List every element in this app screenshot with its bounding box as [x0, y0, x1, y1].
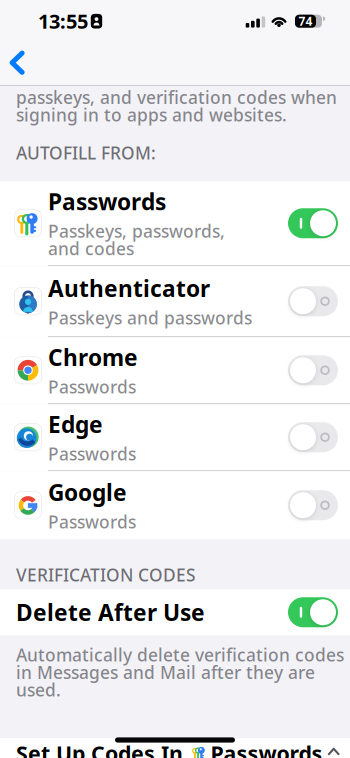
- button[interactable]: Back: [9, 50, 25, 75]
- button[interactable]: Google: [0, 471, 350, 539]
- staticText: Passwords: [48, 375, 136, 398]
- staticText: Edge: [48, 409, 103, 439]
- staticText: Automatically delete verification codes: [16, 643, 344, 666]
- staticText: VERIFICATION CODES: [16, 563, 196, 586]
- staticText: Delete After Use: [16, 597, 205, 627]
- staticText: Chrome: [48, 342, 138, 372]
- staticText: Passwords: [48, 510, 136, 533]
- button[interactable]: Authenticator: [0, 266, 350, 336]
- staticText: Authenticator: [48, 273, 210, 303]
- button[interactable]: Off: [288, 422, 338, 452]
- staticText: 74: [298, 13, 312, 29]
- staticText: Passwords: [210, 739, 322, 758]
- staticText: and codes: [48, 237, 134, 260]
- staticText: 13:55: [38, 8, 88, 34]
- button[interactable]: Off: [288, 286, 338, 316]
- staticText: Google: [48, 477, 127, 507]
- staticText: Passwords: [48, 442, 136, 465]
- button[interactable]: Edge: [0, 404, 350, 470]
- button[interactable]: Delete After Use: [0, 589, 350, 635]
- button[interactable]: Off: [288, 490, 338, 520]
- button[interactable]: On: [288, 208, 338, 238]
- staticText: signing in to apps and websites.: [16, 103, 287, 126]
- staticText: AUTOFILL FROM:: [16, 141, 156, 164]
- button[interactable]: Off: [288, 355, 338, 385]
- staticText: Passkeys, passwords,: [48, 219, 225, 242]
- button[interactable]: Set Up Codes In: [0, 738, 350, 758]
- staticText: Passwords: [48, 186, 166, 216]
- staticText: in Messages and Mail after they are: [16, 661, 315, 684]
- staticText: passkeys, and verification codes when: [16, 86, 337, 109]
- staticText: used.: [16, 678, 61, 701]
- button[interactable]: Chrome: [0, 337, 350, 403]
- staticText: Set Up Codes In: [16, 739, 183, 758]
- staticText: Passkeys and passwords: [48, 306, 252, 329]
- button[interactable]: Passwords: [0, 181, 350, 265]
- button[interactable]: On: [288, 597, 338, 627]
